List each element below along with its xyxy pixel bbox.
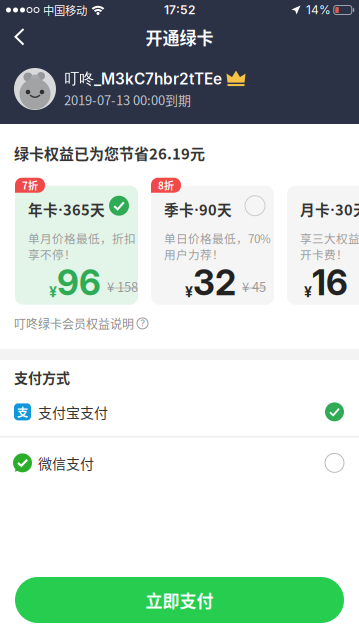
staticText: 32	[193, 262, 236, 304]
staticText: 立即支付	[145, 588, 213, 612]
button[interactable]: 微信支付	[0, 437, 359, 488]
staticText: 支付方式	[14, 367, 70, 387]
staticText: 年卡·365天	[28, 199, 105, 219]
staticText: 7折	[22, 178, 38, 192]
staticText: 96	[57, 262, 101, 304]
staticText: 享三大权益，0	[300, 230, 359, 247]
staticText: 17:52	[164, 3, 195, 17]
staticText: 叮咚绿卡会员权益说明	[14, 315, 134, 332]
staticText: 绿卡权益已为您节省26.19元	[14, 142, 205, 164]
staticText: ?	[140, 318, 144, 329]
staticText: 支付宝支付	[38, 402, 108, 422]
staticText: ¥ 158	[107, 277, 138, 296]
button[interactable]: 支	[0, 387, 359, 436]
staticText: 2019-07-13 00:00到期	[64, 90, 191, 109]
staticText: 16	[312, 262, 348, 304]
staticText: 单日价格最低，70%	[164, 230, 271, 247]
staticText: 叮咚_M3kC7hbr2tTEe	[64, 69, 222, 88]
staticText: ¥	[304, 284, 312, 301]
staticText: 14%	[306, 3, 331, 17]
button[interactable]: 叮咚绿卡会员权益说明	[0, 305, 359, 332]
staticText: 用户力荐！	[164, 246, 224, 263]
staticText: 支	[17, 404, 28, 420]
button[interactable]: 季卡·90天	[151, 178, 274, 305]
button[interactable]: 立即支付	[15, 577, 344, 623]
staticText: ¥ 45	[242, 277, 266, 296]
staticText: 中国移动	[43, 2, 87, 18]
staticText: 单月价格最低，折扣	[28, 230, 136, 247]
staticText: ¥	[185, 284, 193, 301]
staticText: 微信支付	[38, 453, 94, 473]
staticText: 8折	[158, 178, 174, 192]
staticText: ¥	[49, 284, 57, 301]
button[interactable]: Back	[0, 20, 45, 54]
button[interactable]: 年卡·365天	[15, 178, 138, 305]
staticText: 月卡·30天	[300, 199, 359, 219]
staticText: 开通绿卡	[145, 25, 213, 49]
staticText: 季卡·90天	[164, 199, 232, 219]
staticText: 享不停！	[28, 246, 76, 263]
staticText: 开卡费！	[300, 246, 348, 263]
button[interactable]: 月卡·30天	[287, 178, 359, 305]
